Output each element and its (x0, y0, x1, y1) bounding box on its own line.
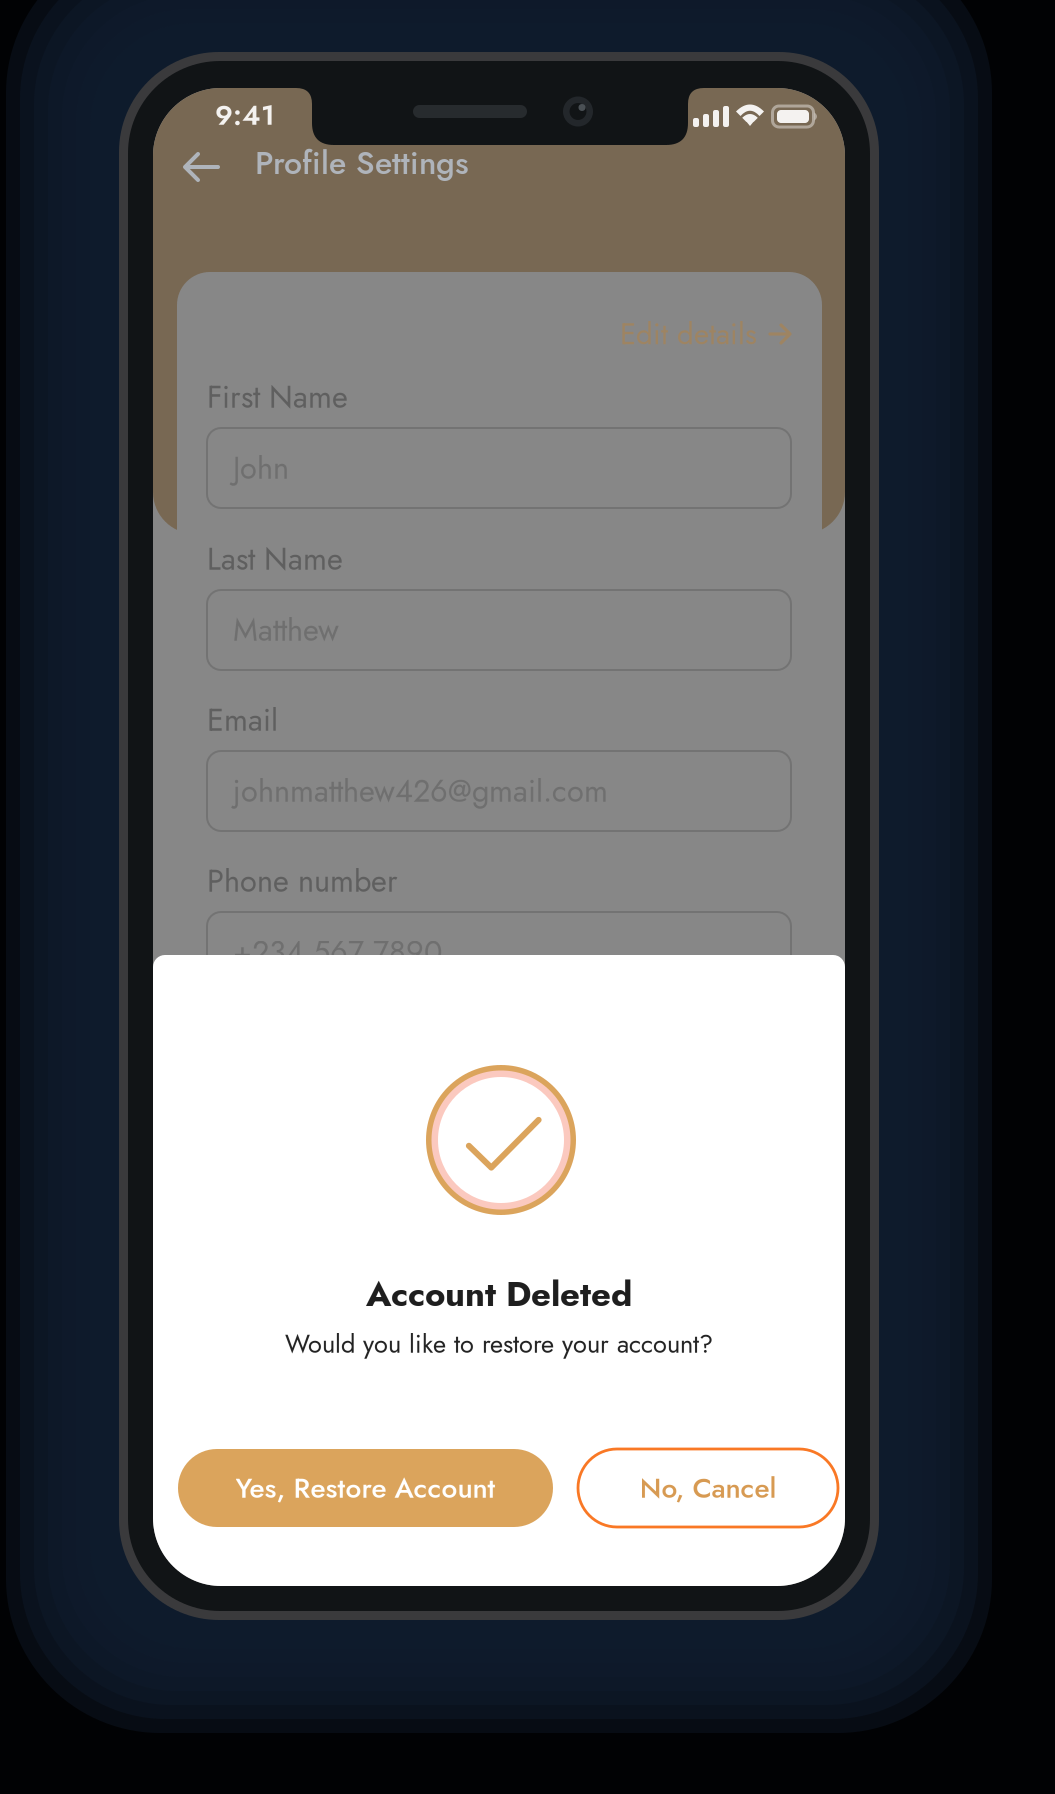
staticText: John (233, 446, 289, 490)
button[interactable]: Edit details (562, 310, 792, 358)
staticText: Email (207, 698, 278, 742)
staticText: Would you like to restore your account? (285, 1326, 713, 1362)
staticText: Last Name (207, 537, 343, 581)
staticText: Edit details (620, 313, 757, 355)
staticText: No, Cancel (639, 1468, 776, 1508)
staticText: Profile Settings (255, 140, 469, 186)
button[interactable]: No, Cancel (578, 1449, 838, 1527)
staticText: First Name (207, 375, 348, 419)
staticText: 9:41 (215, 95, 275, 135)
staticText: Matthew (233, 608, 339, 652)
staticText: Yes, Restore Account (235, 1468, 495, 1508)
button[interactable]: Yes, Restore Account (178, 1449, 553, 1527)
staticText: johnmatthew426@gmail.com (233, 769, 608, 813)
staticText: +234 567 7890 (233, 930, 442, 974)
button[interactable]: Back (169, 136, 234, 198)
staticText: Phone number (207, 859, 398, 903)
staticText: Account Deleted (366, 1269, 632, 1319)
